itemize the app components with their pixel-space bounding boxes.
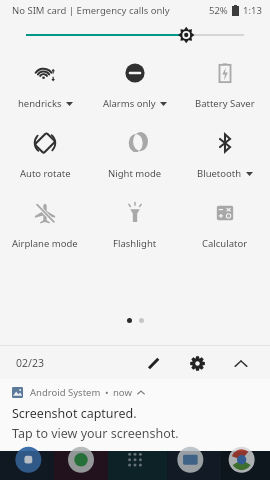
button[interactable]: Collapse <box>226 348 256 378</box>
staticText: Alarms only <box>103 97 156 110</box>
staticText: Airplane mode <box>12 237 78 250</box>
button[interactable]: Battery Saver <box>180 56 270 112</box>
button[interactable]: Brightness <box>0 20 270 50</box>
button[interactable]: hendricks <box>0 56 90 112</box>
button[interactable]: Edit tiles <box>138 348 168 378</box>
button[interactable]: Settings <box>182 348 212 378</box>
button[interactable]: Bluetooth <box>180 126 270 182</box>
staticText: Battery Saver <box>195 97 255 110</box>
staticText: Flashlight <box>113 237 157 250</box>
staticText: Screenshot captured. <box>12 405 137 422</box>
button[interactable]: Android System <box>0 379 270 451</box>
staticText: Android System <box>30 386 101 399</box>
staticText: 02/23 <box>16 356 44 370</box>
staticText: 1:13 <box>243 4 262 17</box>
staticText: Night mode <box>108 167 162 180</box>
staticText: hendricks <box>18 97 62 110</box>
staticText: Auto rotate <box>20 167 71 180</box>
staticText: Bluetooth <box>197 167 242 180</box>
button[interactable]: Airplane mode <box>0 196 90 252</box>
staticText: Calculator <box>202 237 248 250</box>
button[interactable]: Alarms only <box>90 56 180 112</box>
button[interactable]: Flashlight <box>90 196 180 252</box>
button[interactable]: Calculator <box>180 196 270 252</box>
staticText: Tap to view your screenshot. <box>12 425 179 442</box>
staticText: 52% <box>209 4 228 17</box>
button[interactable]: Auto rotate <box>0 126 90 182</box>
staticText: No SIM card | Emergency calls only <box>12 4 170 17</box>
button[interactable]: Night mode <box>90 126 180 182</box>
staticText: now <box>113 386 132 399</box>
staticText: • <box>105 386 109 399</box>
